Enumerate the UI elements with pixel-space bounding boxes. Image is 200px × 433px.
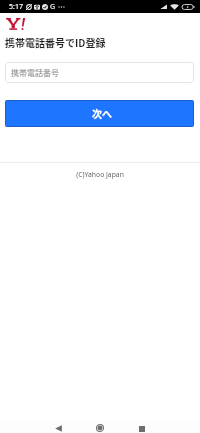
staticText: 5:17: [9, 2, 23, 12]
button[interactable]: Home: [90, 423, 110, 433]
staticText: 次へ: [92, 106, 112, 120]
button[interactable]: 次へ: [6, 101, 193, 126]
staticText: 携帯電話番号でID登録: [5, 35, 106, 49]
staticText: 携帯電話番号: [11, 67, 59, 79]
button[interactable]: Back: [48, 423, 68, 433]
staticText: G: [50, 2, 56, 12]
button[interactable]: Recents: [132, 423, 152, 433]
staticText: (C)Yahoo Japan: [76, 170, 124, 179]
button[interactable]: 携帯電話番号: [5, 62, 194, 83]
